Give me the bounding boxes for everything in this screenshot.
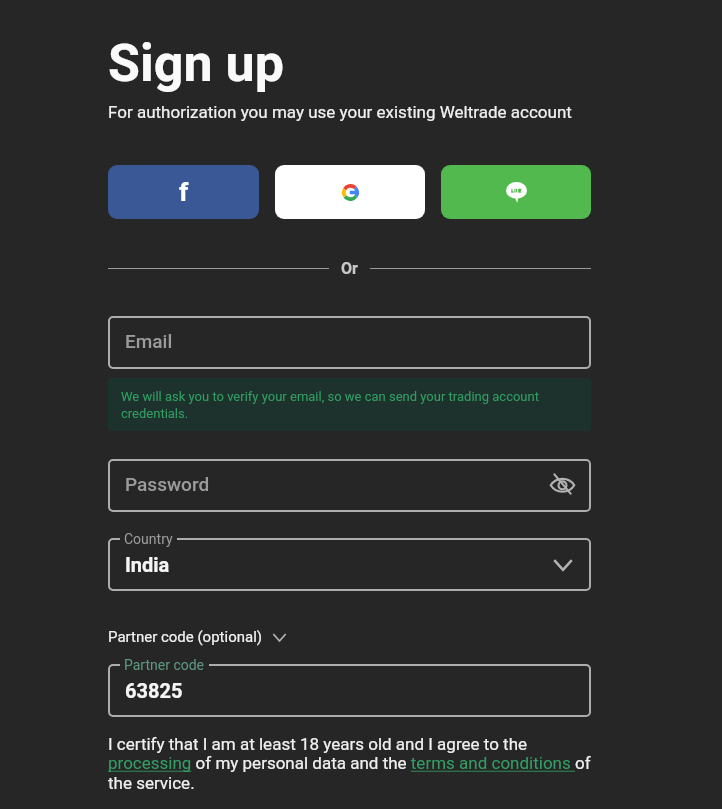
- other: Expand: [551, 553, 575, 577]
- button[interactable]: India: [108, 538, 591, 591]
- staticText: 63825: [125, 679, 575, 702]
- other: Show password: [550, 473, 575, 495]
- other: Expand: [271, 629, 288, 646]
- staticText: Country: [124, 531, 173, 547]
- staticText: f: [179, 177, 189, 207]
- staticText: For authorization you may use your exist…: [108, 102, 572, 122]
- staticText: India: [125, 553, 551, 576]
- button[interactable]: Email: [108, 316, 591, 369]
- button[interactable]: Sign up with Facebook: [108, 165, 259, 219]
- button[interactable]: Sign up with LINE: [441, 165, 591, 219]
- staticText: Email: [125, 330, 575, 352]
- staticText: Partner code: [124, 657, 205, 673]
- staticText: Sign up: [108, 33, 284, 94]
- staticText: Password: [125, 473, 550, 495]
- button[interactable]: Password: [108, 459, 591, 512]
- staticText: Partner code (optional): [108, 628, 263, 646]
- button[interactable]: Sign up with Google: [275, 165, 425, 219]
- staticText: We will ask you to verify your email, so…: [121, 389, 591, 422]
- staticText: I certify that I am at least 18 years ol…: [108, 734, 591, 794]
- button[interactable]: 63825: [108, 664, 591, 717]
- staticText: Or: [341, 259, 358, 278]
- button[interactable]: Partner code (optional): [108, 625, 288, 649]
